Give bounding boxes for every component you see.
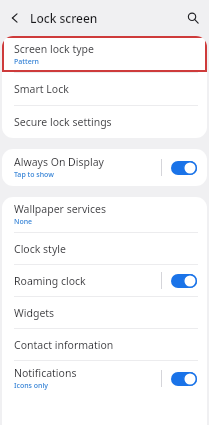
button[interactable]: Back [0,3,30,33]
button[interactable]: Smart Lock [2,73,207,105]
button[interactable]: Notifications [171,372,197,386]
staticText: Roaming clock [14,274,86,288]
button[interactable]: Always On Display [2,149,207,186]
button[interactable]: Wallpaper services [2,197,207,232]
button[interactable]: Secure lock settings [2,106,207,138]
staticText: Contact information [14,338,114,352]
staticText: Secure lock settings [14,115,112,129]
staticText: Notifications [14,366,77,380]
button[interactable]: Always On Display [171,161,197,175]
staticText: Pattern [14,57,40,67]
staticText: None [14,217,33,227]
button[interactable]: Widgets [2,297,207,328]
staticText: Icons only [14,381,49,391]
staticText: Always On Display [14,155,104,169]
button[interactable]: Screen lock type [2,36,207,72]
staticText: Widgets [14,306,55,320]
button[interactable]: Roaming clock [171,274,197,288]
button[interactable]: Search [177,2,209,34]
button[interactable]: Contact information [2,329,207,360]
button[interactable]: Roaming clock [2,265,207,296]
staticText: Lock screen [30,10,177,26]
staticText: Clock style [14,242,66,256]
button[interactable]: Clock style [2,233,207,264]
staticText: Smart Lock [14,82,69,96]
staticText: Tap to show [14,170,54,180]
staticText: Screen lock type [14,42,94,56]
button[interactable]: Notifications [2,361,207,396]
staticText: Wallpaper services [14,202,106,216]
